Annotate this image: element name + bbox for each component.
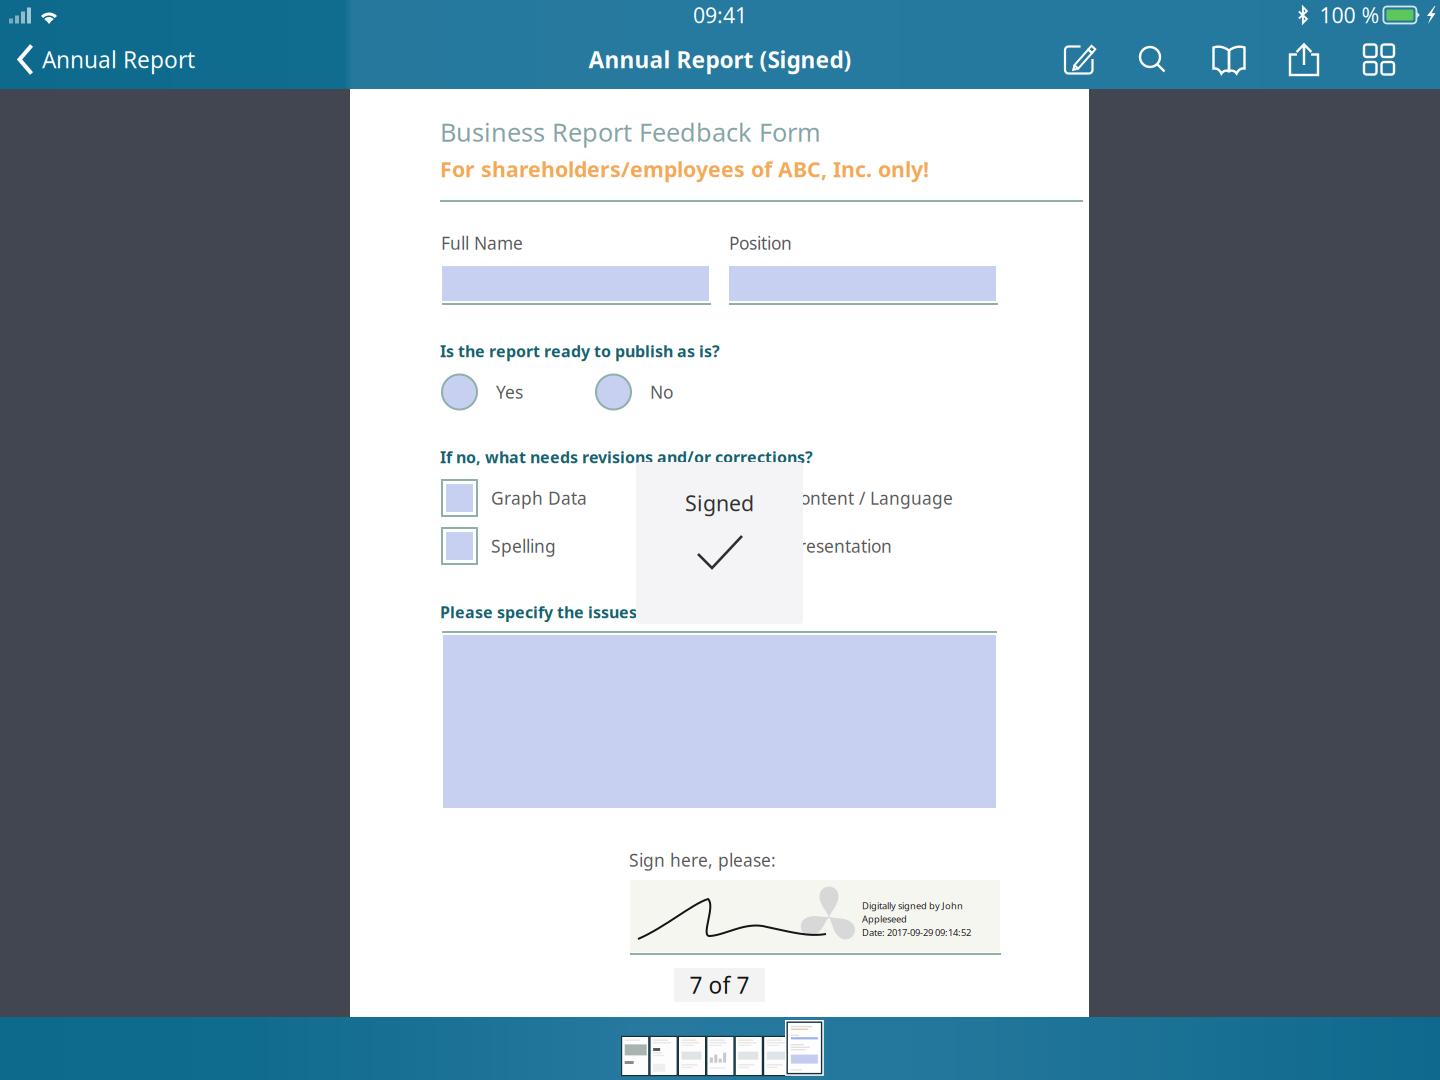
button[interactable]: Page 5 [735, 1036, 763, 1076]
button[interactable]: Page 2 [649, 1036, 678, 1076]
staticText: 100 % [1319, 1, 1379, 29]
staticText: Sign here, please: [629, 848, 776, 871]
staticText: Appleseed [862, 913, 907, 925]
staticText: Yes [496, 380, 523, 403]
staticText: Full Name [441, 231, 523, 254]
staticText: Digitally signed by John [862, 899, 963, 912]
button[interactable]: Page thumbnails [1361, 42, 1397, 77]
staticText: Content / Language [789, 486, 953, 509]
button[interactable]: Annual Report [0, 33, 195, 85]
staticText: Please specify the issues with the repor… [440, 601, 767, 623]
staticText: Business Report Feedback Form [440, 115, 821, 149]
staticText: Annual Report [42, 44, 195, 74]
staticText: Annual Report (Signed) [588, 44, 851, 74]
button[interactable]: Page 1 [621, 1036, 649, 1076]
staticText: 09:41 [693, 1, 747, 29]
button[interactable]: Page 4 [706, 1036, 735, 1076]
staticText: Graph Data [491, 486, 587, 509]
button[interactable]: Search [1136, 42, 1172, 77]
button[interactable]: Page 6 [763, 1036, 791, 1076]
button[interactable]: Bookmarks [1211, 42, 1247, 77]
staticText: For shareholders/employees of ABC, Inc. … [440, 155, 929, 183]
staticText: Spelling [491, 534, 556, 557]
button[interactable]: Share [1286, 42, 1322, 77]
staticText: Date: 2017-09-29 09:14:52 [862, 926, 971, 939]
button[interactable]: Markup [1061, 42, 1097, 77]
staticText: Is the report ready to publish as is? [440, 340, 720, 362]
staticText: No [650, 380, 673, 403]
button[interactable]: Page 7, current page [785, 1020, 824, 1076]
staticText: Presentation [789, 534, 892, 557]
staticText: Signed [685, 489, 754, 517]
staticText: If no, what needs revisions and/or corre… [440, 446, 813, 468]
staticText: Position [729, 231, 792, 254]
button[interactable]: Page 3 [678, 1036, 706, 1076]
staticText: 7 of 7 [689, 970, 749, 1000]
